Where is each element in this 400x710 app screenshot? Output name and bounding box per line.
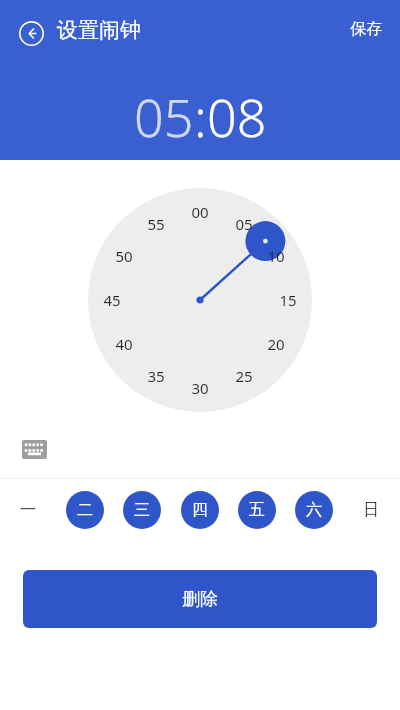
button[interactable]: 保存 — [340, 11, 392, 47]
staticText: 00 — [191, 202, 209, 222]
staticText: 一 — [20, 500, 36, 520]
staticText: 55 — [147, 214, 165, 234]
button[interactable]: 日 — [352, 491, 390, 529]
staticText: 30 — [191, 378, 209, 398]
button[interactable]: 四 — [181, 491, 219, 529]
button[interactable]: 六 — [295, 491, 333, 529]
staticText: 保存 — [350, 19, 382, 39]
button[interactable]: Minute picker — [88, 188, 312, 412]
staticText: 40 — [115, 334, 133, 354]
staticText: 50 — [115, 246, 133, 266]
staticText: 四 — [192, 500, 208, 520]
staticText: 25 — [235, 366, 253, 386]
staticText: 10 — [267, 246, 285, 266]
staticText: 35 — [147, 366, 165, 386]
staticText: 六 — [306, 500, 322, 520]
staticText: 五 — [249, 500, 265, 520]
button[interactable]: 删除 — [23, 570, 377, 628]
staticText: : — [194, 81, 207, 152]
button[interactable]: 二 — [66, 491, 104, 529]
staticText: 日 — [363, 500, 379, 520]
staticText: 05 — [235, 214, 253, 234]
button[interactable]: 05 — [134, 81, 194, 152]
button[interactable]: Switch to keyboard input — [14, 429, 54, 469]
button[interactable]: Back — [13, 15, 49, 51]
button[interactable]: 08 — [207, 81, 267, 152]
staticText: 20 — [267, 334, 285, 354]
staticText: 15 — [279, 290, 297, 310]
button[interactable]: 五 — [238, 491, 276, 529]
staticText: 05 — [134, 81, 194, 152]
staticText: 设置闹钟 — [57, 17, 141, 43]
staticText: 08 — [207, 81, 267, 152]
staticText: 三 — [134, 500, 150, 520]
staticText: 删除 — [182, 588, 218, 611]
staticText: 二 — [77, 500, 93, 520]
button[interactable]: 三 — [123, 491, 161, 529]
staticText: 45 — [103, 290, 121, 310]
button[interactable]: 一 — [9, 491, 47, 529]
